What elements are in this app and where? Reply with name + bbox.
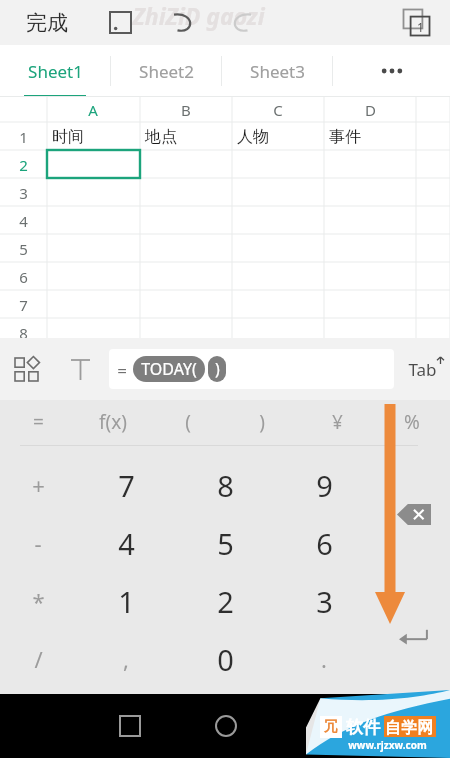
button[interactable]: )	[232, 402, 292, 442]
button[interactable]: 4	[0, 211, 47, 230]
button[interactable]: /	[10, 632, 66, 686]
staticText: 自学网	[385, 718, 433, 738]
button[interactable]: 时间	[52, 126, 137, 147]
staticText: (	[185, 409, 191, 435]
button[interactable]: A	[71, 99, 115, 120]
button[interactable]: 7	[92, 458, 160, 512]
staticText: Tab	[408, 358, 437, 381]
button[interactable]: 事件	[329, 126, 413, 147]
button[interactable]: (	[158, 402, 218, 442]
staticText: )	[215, 358, 220, 380]
button[interactable]: 地点	[145, 126, 229, 147]
staticText: ¥	[332, 409, 343, 435]
button[interactable]: 1	[0, 127, 47, 146]
button[interactable]: 7	[0, 295, 47, 314]
button[interactable]: Sheet1	[0, 45, 110, 97]
button[interactable]: 6	[0, 267, 47, 286]
button[interactable]: +	[10, 458, 66, 512]
button[interactable]: *	[10, 574, 66, 628]
button[interactable]: 6	[290, 516, 358, 570]
staticText: 2	[19, 155, 28, 174]
staticText: -	[34, 528, 42, 558]
button[interactable]: ,	[92, 632, 160, 686]
staticText: 8	[19, 323, 28, 342]
button[interactable]: 3	[290, 574, 358, 628]
button[interactable]: 3	[0, 183, 47, 202]
staticText: 5	[217, 524, 234, 563]
button[interactable]: 5	[0, 239, 47, 258]
button[interactable]: 4	[92, 516, 160, 570]
staticText: C	[273, 100, 283, 120]
button[interactable]: 0	[191, 632, 259, 686]
button[interactable]: =	[8, 402, 68, 442]
button[interactable]: Recents	[100, 708, 160, 744]
staticText: 6	[316, 524, 333, 563]
staticText: 5	[19, 239, 28, 258]
staticText: 事件	[329, 127, 361, 147]
button[interactable]: Save	[98, 6, 142, 39]
staticText: 4	[19, 211, 28, 230]
staticText: 0	[217, 640, 234, 679]
button[interactable]: Sheet3	[222, 45, 332, 97]
staticText: *	[32, 586, 45, 616]
button[interactable]: Text format	[60, 352, 100, 386]
staticText: 地点	[145, 127, 177, 147]
button[interactable]: 5	[191, 516, 259, 570]
button[interactable]: Tab	[398, 352, 446, 386]
staticText: 2	[217, 582, 234, 621]
button[interactable]: 完成	[12, 6, 82, 39]
staticText: Sheet3	[250, 60, 305, 83]
staticText: 人物	[237, 127, 269, 147]
button[interactable]: Backspace	[388, 496, 440, 532]
button[interactable]: 2	[0, 155, 47, 174]
staticText: )	[259, 409, 265, 435]
button[interactable]: 2	[191, 574, 259, 628]
button[interactable]: D	[348, 99, 392, 120]
staticText: %	[404, 409, 420, 435]
staticText: D	[365, 100, 376, 120]
staticText: .	[321, 644, 327, 674]
staticText: /	[34, 644, 43, 674]
staticText: 9	[316, 466, 333, 505]
button[interactable]: =	[109, 349, 394, 389]
staticText: 3	[316, 582, 333, 621]
button[interactable]: Redo	[220, 6, 264, 39]
staticText: 1	[417, 19, 424, 35]
button[interactable]: Sheets	[396, 5, 436, 40]
staticText: B	[181, 100, 191, 120]
button[interactable]: Enter	[388, 616, 440, 658]
button[interactable]: 8	[191, 458, 259, 512]
button[interactable]: -	[10, 516, 66, 570]
staticText: 3	[19, 183, 28, 202]
staticText: f(x)	[99, 409, 127, 435]
button[interactable]: ¥	[307, 402, 367, 442]
staticText: 1	[19, 127, 28, 146]
button[interactable]: f(x)	[83, 402, 143, 442]
button[interactable]: 9	[290, 458, 358, 512]
staticText: =	[33, 409, 44, 435]
button[interactable]: B	[164, 99, 208, 120]
button[interactable]: 8	[0, 323, 47, 342]
button[interactable]: Undo	[160, 6, 204, 39]
staticText: A	[88, 100, 98, 120]
staticText: 7	[118, 466, 135, 505]
staticText: +	[32, 470, 45, 500]
button[interactable]: 人物	[237, 126, 321, 147]
staticText: 时间	[52, 127, 84, 147]
button[interactable]: Sheet2	[111, 45, 221, 97]
staticText: Sheet1	[28, 60, 83, 83]
staticText: 7	[19, 295, 28, 314]
button[interactable]: C	[256, 99, 300, 120]
staticText: 完成	[26, 10, 68, 36]
staticText: www.rjzxw.com	[348, 738, 427, 752]
staticText: Sheet2	[139, 60, 194, 83]
button[interactable]: 1	[92, 574, 160, 628]
staticText: ZhiZiD gaozi	[132, 0, 265, 31]
button[interactable]: More	[333, 45, 450, 97]
button[interactable]: %	[382, 402, 442, 442]
button[interactable]: Cell style	[6, 352, 46, 386]
staticText: ,	[123, 644, 129, 674]
button[interactable]: Home	[196, 708, 256, 744]
staticText: =	[117, 359, 127, 382]
